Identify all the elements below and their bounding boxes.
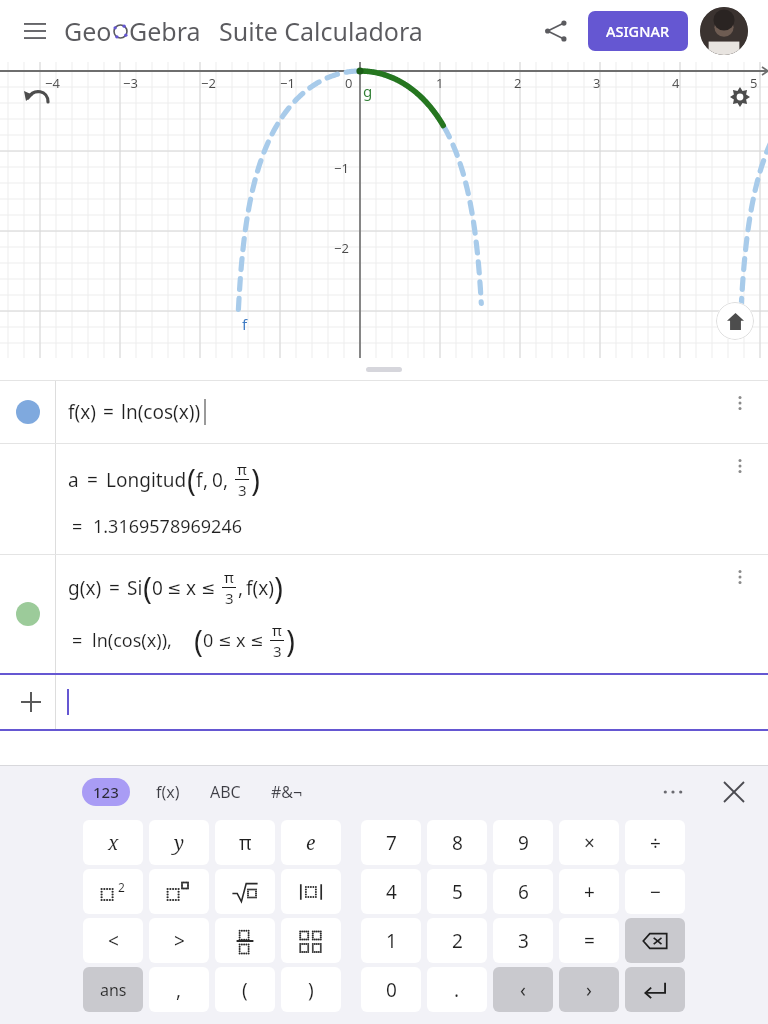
button[interactable]: More options (726, 452, 754, 480)
staticText: f(x) (246, 575, 274, 601)
button[interactable]: Key (83, 820, 143, 865)
button[interactable]: Enter (625, 967, 685, 1012)
staticText: π (237, 459, 247, 479)
staticText: f(x) (156, 781, 180, 803)
button[interactable]: Key (281, 820, 341, 865)
button[interactable]: ASIGNAR (588, 11, 688, 51)
staticText: 5 (452, 879, 463, 905)
staticText: ASIGNAR (606, 21, 670, 41)
button[interactable]: Power (149, 869, 209, 914)
button[interactable]: > (149, 918, 209, 963)
button[interactable]: = (559, 918, 619, 963)
button[interactable]: Close keyboard (716, 774, 752, 810)
button[interactable]: Toggle visibility (16, 400, 40, 424)
staticText: 7 (386, 830, 397, 856)
button[interactable]: Square root (215, 869, 275, 914)
staticText: ln(cos(x)) (121, 399, 201, 425)
button[interactable]: 2 (427, 918, 487, 963)
staticText: Suite Calculadora (219, 14, 423, 48)
button[interactable]: . (427, 967, 487, 1012)
staticText: f(x) (68, 399, 96, 425)
button[interactable]: × (559, 820, 619, 865)
staticText: x (186, 575, 197, 601)
staticText: −1 (280, 74, 295, 92)
button[interactable]: 3 (493, 918, 553, 963)
button[interactable]: − (625, 869, 685, 914)
button[interactable]: Fraction (215, 918, 275, 963)
staticText: g(x) (68, 575, 102, 601)
button[interactable]: < (83, 918, 143, 963)
button[interactable]: Matrix (281, 918, 341, 963)
staticText: › (586, 977, 592, 1003)
button[interactable]: 6 (493, 869, 553, 914)
button[interactable]: 7 (361, 820, 421, 865)
button[interactable]: More options (726, 389, 754, 417)
staticText: −2 (201, 74, 216, 92)
staticText: e (306, 830, 316, 856)
staticText: π (224, 567, 234, 587)
button[interactable]: Account (700, 7, 748, 55)
button[interactable]: a (0, 444, 768, 554)
button[interactable]: #&¬ (267, 775, 307, 809)
other: Add input (18, 689, 44, 715)
button[interactable]: Toggle visibility (0, 555, 768, 673)
staticText: g (363, 81, 373, 101)
button[interactable]: Key (149, 820, 209, 865)
button[interactable]: 5 (427, 869, 487, 914)
staticText: 1 (386, 928, 397, 954)
staticText: , (176, 977, 182, 1003)
button[interactable]: Add input (0, 675, 768, 729)
button[interactable]: Toggle visibility (0, 381, 768, 443)
button[interactable]: 123 (82, 778, 130, 806)
staticText: ( (187, 459, 196, 500)
button[interactable]: Toggle visibility (16, 602, 40, 626)
staticText: −2 (334, 239, 349, 257)
staticText: ) (251, 459, 260, 500)
staticText: 8 (452, 830, 463, 856)
staticText: Si (127, 575, 143, 601)
button[interactable]: ( (215, 967, 275, 1012)
button[interactable]: Backspace (625, 918, 685, 963)
staticText: ) (308, 977, 314, 1003)
button[interactable]: ABC (206, 775, 245, 809)
button[interactable]: 4 (361, 869, 421, 914)
button[interactable]: 0 (361, 967, 421, 1012)
staticText: ( (242, 977, 248, 1003)
button[interactable]: › (559, 967, 619, 1012)
staticText: ( (143, 567, 152, 608)
button[interactable]: ans (83, 967, 143, 1012)
button[interactable]: ‹ (493, 967, 553, 1012)
staticText: Gebra (129, 14, 201, 48)
staticText: 5 (750, 74, 758, 92)
button[interactable]: Square (83, 869, 143, 914)
button[interactable]: f(x) (152, 775, 184, 809)
button[interactable]: ) (281, 967, 341, 1012)
button[interactable]: π (215, 820, 275, 865)
button[interactable]: 8 (427, 820, 487, 865)
button[interactable]: ÷ (625, 820, 685, 865)
staticText: 1.3169578969246 (93, 514, 242, 539)
staticText: 0 (212, 467, 223, 493)
staticText: π (272, 620, 282, 640)
button[interactable]: More (656, 775, 690, 809)
button[interactable]: + (559, 869, 619, 914)
staticText: Geo (64, 14, 112, 48)
staticText: × (584, 830, 595, 856)
button[interactable]: Menu (14, 10, 56, 52)
button[interactable]: 9 (493, 820, 553, 865)
staticText: −3 (123, 74, 138, 92)
staticText: . (454, 977, 460, 1003)
staticText: = (87, 467, 98, 493)
staticText: ) (274, 567, 283, 608)
staticText: , (238, 575, 244, 601)
button[interactable]: Share (534, 9, 578, 53)
staticText: 4 (672, 74, 680, 92)
staticText: 123 (93, 782, 119, 802)
button[interactable]: 1 (361, 918, 421, 963)
button[interactable]: , (149, 967, 209, 1012)
staticText: 2 (118, 879, 125, 895)
button[interactable]: Reset view (716, 302, 754, 340)
staticText: = (72, 514, 83, 539)
button[interactable]: More options (726, 563, 754, 591)
button[interactable]: Absolute value (281, 869, 341, 914)
